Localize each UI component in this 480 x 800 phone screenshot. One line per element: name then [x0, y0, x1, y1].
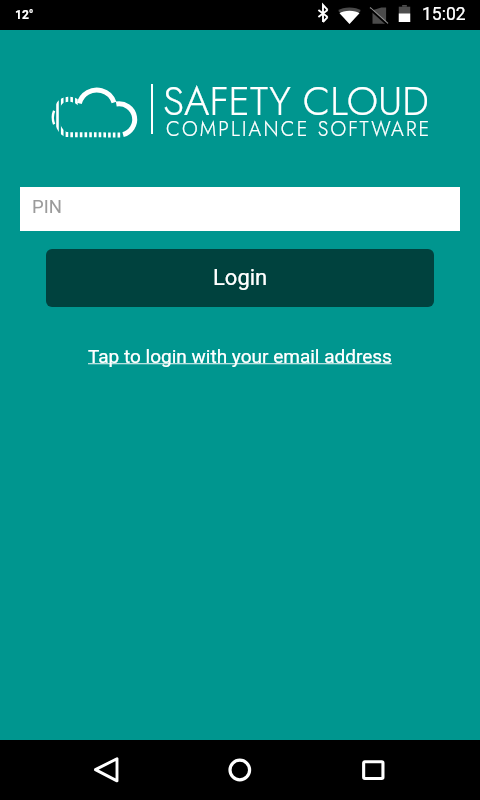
staticText: SAFETY CLOUD — [163, 72, 429, 130]
button[interactable]: PIN — [20, 187, 460, 231]
staticText: COMPLIANCE SOFTWARE — [166, 115, 432, 144]
staticText: PIN — [32, 196, 62, 218]
staticText: 15:02 — [422, 4, 466, 25]
staticText: 12° — [15, 8, 34, 22]
button[interactable]: Tap to login with your email address — [84, 341, 396, 371]
staticText: Login — [213, 265, 268, 291]
button[interactable]: Recent apps — [333, 740, 413, 800]
button[interactable]: Back — [66, 740, 146, 800]
button[interactable]: Home — [200, 740, 280, 800]
button[interactable]: Login — [46, 249, 434, 307]
